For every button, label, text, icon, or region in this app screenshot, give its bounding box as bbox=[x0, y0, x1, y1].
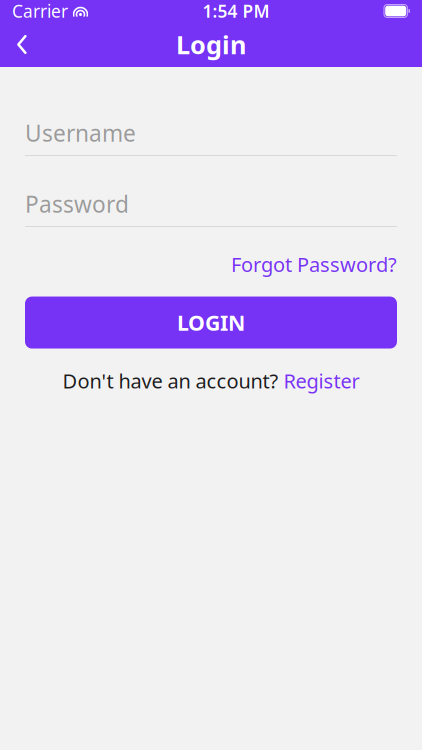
staticText: Register bbox=[283, 368, 359, 394]
button[interactable]: Forgot Password? bbox=[231, 245, 397, 284]
button[interactable]: Back bbox=[0, 22, 44, 66]
staticText: Username bbox=[25, 118, 136, 148]
staticText: Carrier bbox=[12, 0, 68, 22]
staticText: Don't have an account? bbox=[62, 368, 278, 394]
staticText: Forgot Password? bbox=[231, 251, 397, 278]
staticText: LOGIN bbox=[177, 308, 245, 337]
button[interactable]: Don't have an account? bbox=[25, 360, 397, 402]
staticText: Password bbox=[25, 189, 129, 219]
button[interactable]: LOGIN bbox=[25, 297, 397, 349]
staticText: Login bbox=[176, 28, 246, 61]
staticText: 1:54 PM bbox=[202, 0, 269, 22]
